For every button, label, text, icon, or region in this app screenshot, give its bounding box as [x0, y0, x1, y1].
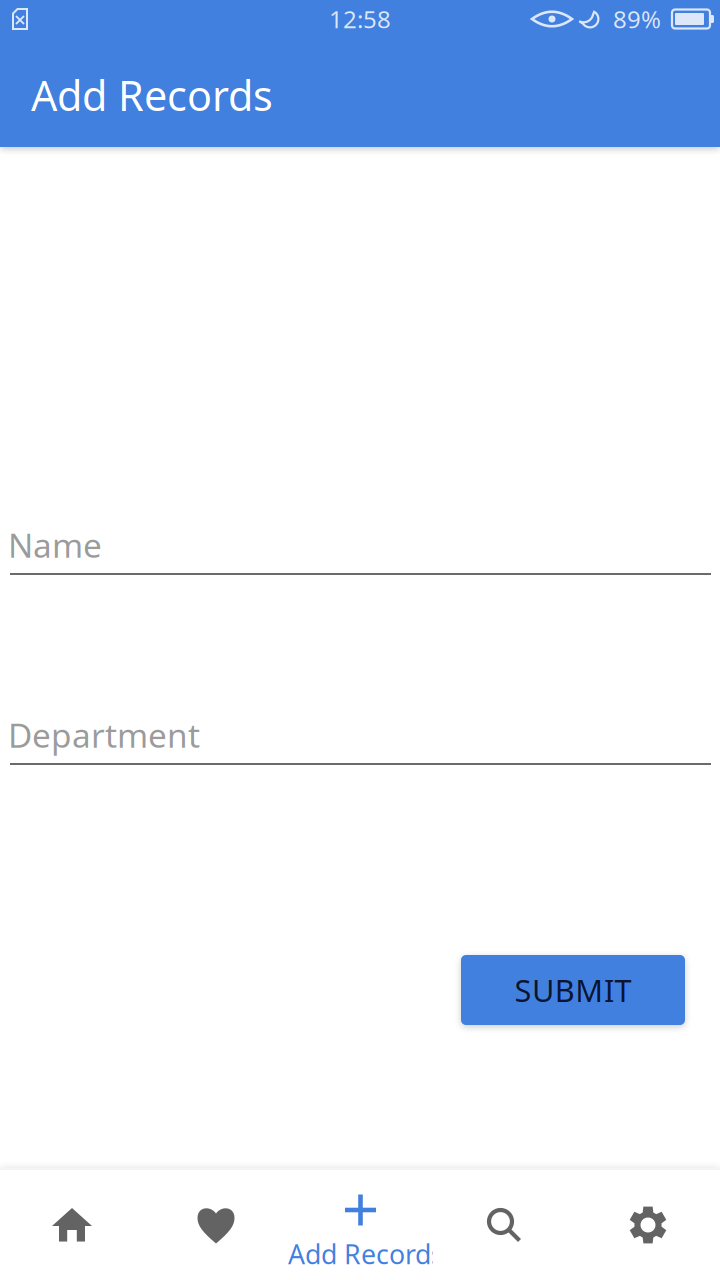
staticText: SUBMIT — [514, 970, 631, 1010]
staticText: Name — [8, 523, 102, 567]
staticText: Add Records — [288, 1236, 444, 1272]
staticText: Add Records — [31, 68, 273, 122]
staticText: 12:58 — [329, 3, 391, 35]
staticText: 89% — [613, 3, 661, 35]
button[interactable]: Add Records — [288, 1170, 432, 1280]
button[interactable]: Settings — [576, 1170, 720, 1280]
staticText: Department — [8, 713, 200, 757]
button[interactable]: Search — [432, 1170, 576, 1280]
button[interactable]: SUBMIT — [461, 955, 685, 1025]
button[interactable]: Home — [0, 1170, 144, 1280]
button[interactable]: Favorites — [144, 1170, 288, 1280]
